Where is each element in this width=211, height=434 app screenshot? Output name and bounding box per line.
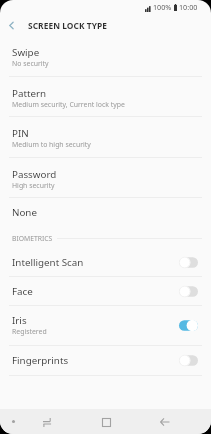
- button[interactable]: None: [0, 198, 211, 227]
- button[interactable]: Hide navigation bar: [5, 413, 22, 430]
- button[interactable]: Face: [0, 277, 211, 305]
- staticText: Iris: [12, 314, 27, 327]
- button[interactable]: Recent apps: [36, 411, 58, 433]
- button[interactable]: Fingerprints: [0, 346, 211, 375]
- button[interactable]: PIN: [0, 117, 211, 157]
- staticText: Face: [12, 285, 33, 298]
- staticText: SCREEN LOCK TYPE: [28, 20, 108, 31]
- button[interactable]: Off: [179, 256, 198, 269]
- staticText: BIOMETRICS: [12, 234, 53, 243]
- staticText: Swipe: [12, 46, 40, 59]
- button[interactable]: Iris: [0, 306, 211, 345]
- staticText: Intelligent Scan: [12, 256, 84, 269]
- button[interactable]: Intelligent Scan: [0, 249, 211, 276]
- staticText: No security: [12, 59, 49, 68]
- staticText: Registered: [12, 327, 47, 336]
- button[interactable]: Password: [0, 158, 211, 197]
- staticText: 10:00: [179, 2, 198, 12]
- staticText: None: [12, 206, 37, 219]
- button[interactable]: Off: [179, 354, 198, 367]
- staticText: Fingerprints: [12, 354, 69, 367]
- button[interactable]: Back: [154, 411, 176, 433]
- button[interactable]: Swipe: [0, 36, 211, 76]
- button[interactable]: Home: [95, 411, 117, 433]
- staticText: Password: [12, 168, 57, 181]
- button[interactable]: Pattern: [0, 77, 211, 116]
- staticText: Pattern: [12, 87, 47, 100]
- staticText: 100%: [153, 2, 172, 12]
- staticText: PIN: [12, 127, 29, 140]
- staticText: Medium to high security: [12, 140, 91, 149]
- button[interactable]: Off: [179, 285, 198, 298]
- button[interactable]: Navigate up: [0, 14, 22, 36]
- staticText: High security: [12, 181, 55, 190]
- button[interactable]: On: [179, 319, 198, 332]
- staticText: Medium security, Current lock type: [12, 100, 125, 109]
